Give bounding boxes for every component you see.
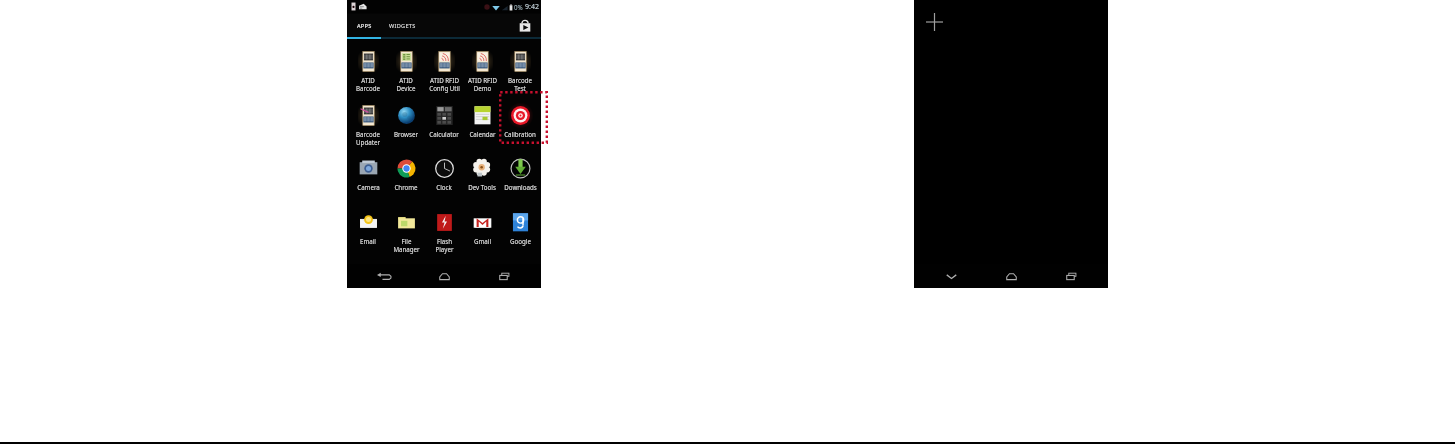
staticText: Email — [360, 237, 376, 245]
staticText: 9:42 — [525, 2, 539, 12]
staticText: WIDGETS — [389, 22, 416, 30]
button[interactable]: Browser — [387, 93, 425, 138]
button[interactable]: ATID RFID Config Util — [425, 39, 463, 92]
button[interactable]: Clock — [425, 146, 463, 191]
button[interactable]: Chrome — [387, 146, 425, 191]
button[interactable]: Barcode Updater — [349, 93, 387, 146]
button[interactable]: Back — [369, 264, 399, 288]
staticText: 0% — [514, 3, 523, 11]
button[interactable]: Calculator — [425, 93, 463, 138]
button[interactable]: Dev Tools — [463, 146, 501, 191]
staticText: Barcode Test — [508, 76, 532, 92]
staticText: Gmail — [474, 237, 491, 245]
button[interactable]: Play Store — [518, 19, 532, 33]
button[interactable]: Calendar — [463, 93, 501, 138]
staticText: Browser — [394, 130, 418, 138]
button[interactable]: Gmail — [463, 200, 501, 245]
button[interactable]: Recents — [1056, 264, 1086, 288]
button[interactable]: APPS — [347, 14, 381, 37]
button[interactable]: ATID Device — [387, 39, 425, 92]
button[interactable]: Barcode Test — [501, 39, 539, 92]
staticText: Chrome — [394, 183, 418, 191]
staticText: Google — [510, 237, 531, 245]
staticText: Barcode Updater — [356, 130, 380, 146]
staticText: ATID RFID Config Util — [429, 76, 460, 92]
staticText: Flash Player — [435, 237, 454, 253]
staticText: Calibration — [504, 130, 536, 138]
button[interactable]: Home — [996, 264, 1026, 288]
button[interactable]: Recents — [489, 264, 519, 288]
staticText: ATID Barcode — [356, 76, 380, 92]
button[interactable]: Dismiss — [936, 264, 966, 288]
button[interactable]: Downloads — [501, 146, 539, 191]
staticText: ATID Device — [396, 76, 416, 92]
button[interactable]: WIDGETS — [381, 14, 423, 37]
button[interactable]: ATID RFID Demo — [463, 39, 501, 92]
staticText: Camera — [357, 183, 380, 191]
button[interactable]: Calibration — [501, 93, 539, 138]
staticText: Clock — [436, 183, 452, 191]
staticText: Dev Tools — [468, 183, 496, 191]
staticText: Downloads — [504, 183, 537, 191]
button[interactable]: File Manager — [387, 200, 425, 253]
staticText: Calendar — [469, 130, 496, 138]
button[interactable]: Camera — [349, 146, 387, 191]
button[interactable]: Home — [429, 264, 459, 288]
staticText: Calculator — [429, 130, 459, 138]
button[interactable]: ATID Barcode — [349, 39, 387, 92]
staticText: APPS — [357, 22, 372, 30]
button[interactable]: Google — [501, 200, 539, 245]
button[interactable]: Email — [349, 200, 387, 245]
button[interactable]: Flash Player — [425, 200, 463, 253]
staticText: File Manager — [393, 237, 420, 253]
staticText: ATID RFID Demo — [468, 76, 497, 92]
